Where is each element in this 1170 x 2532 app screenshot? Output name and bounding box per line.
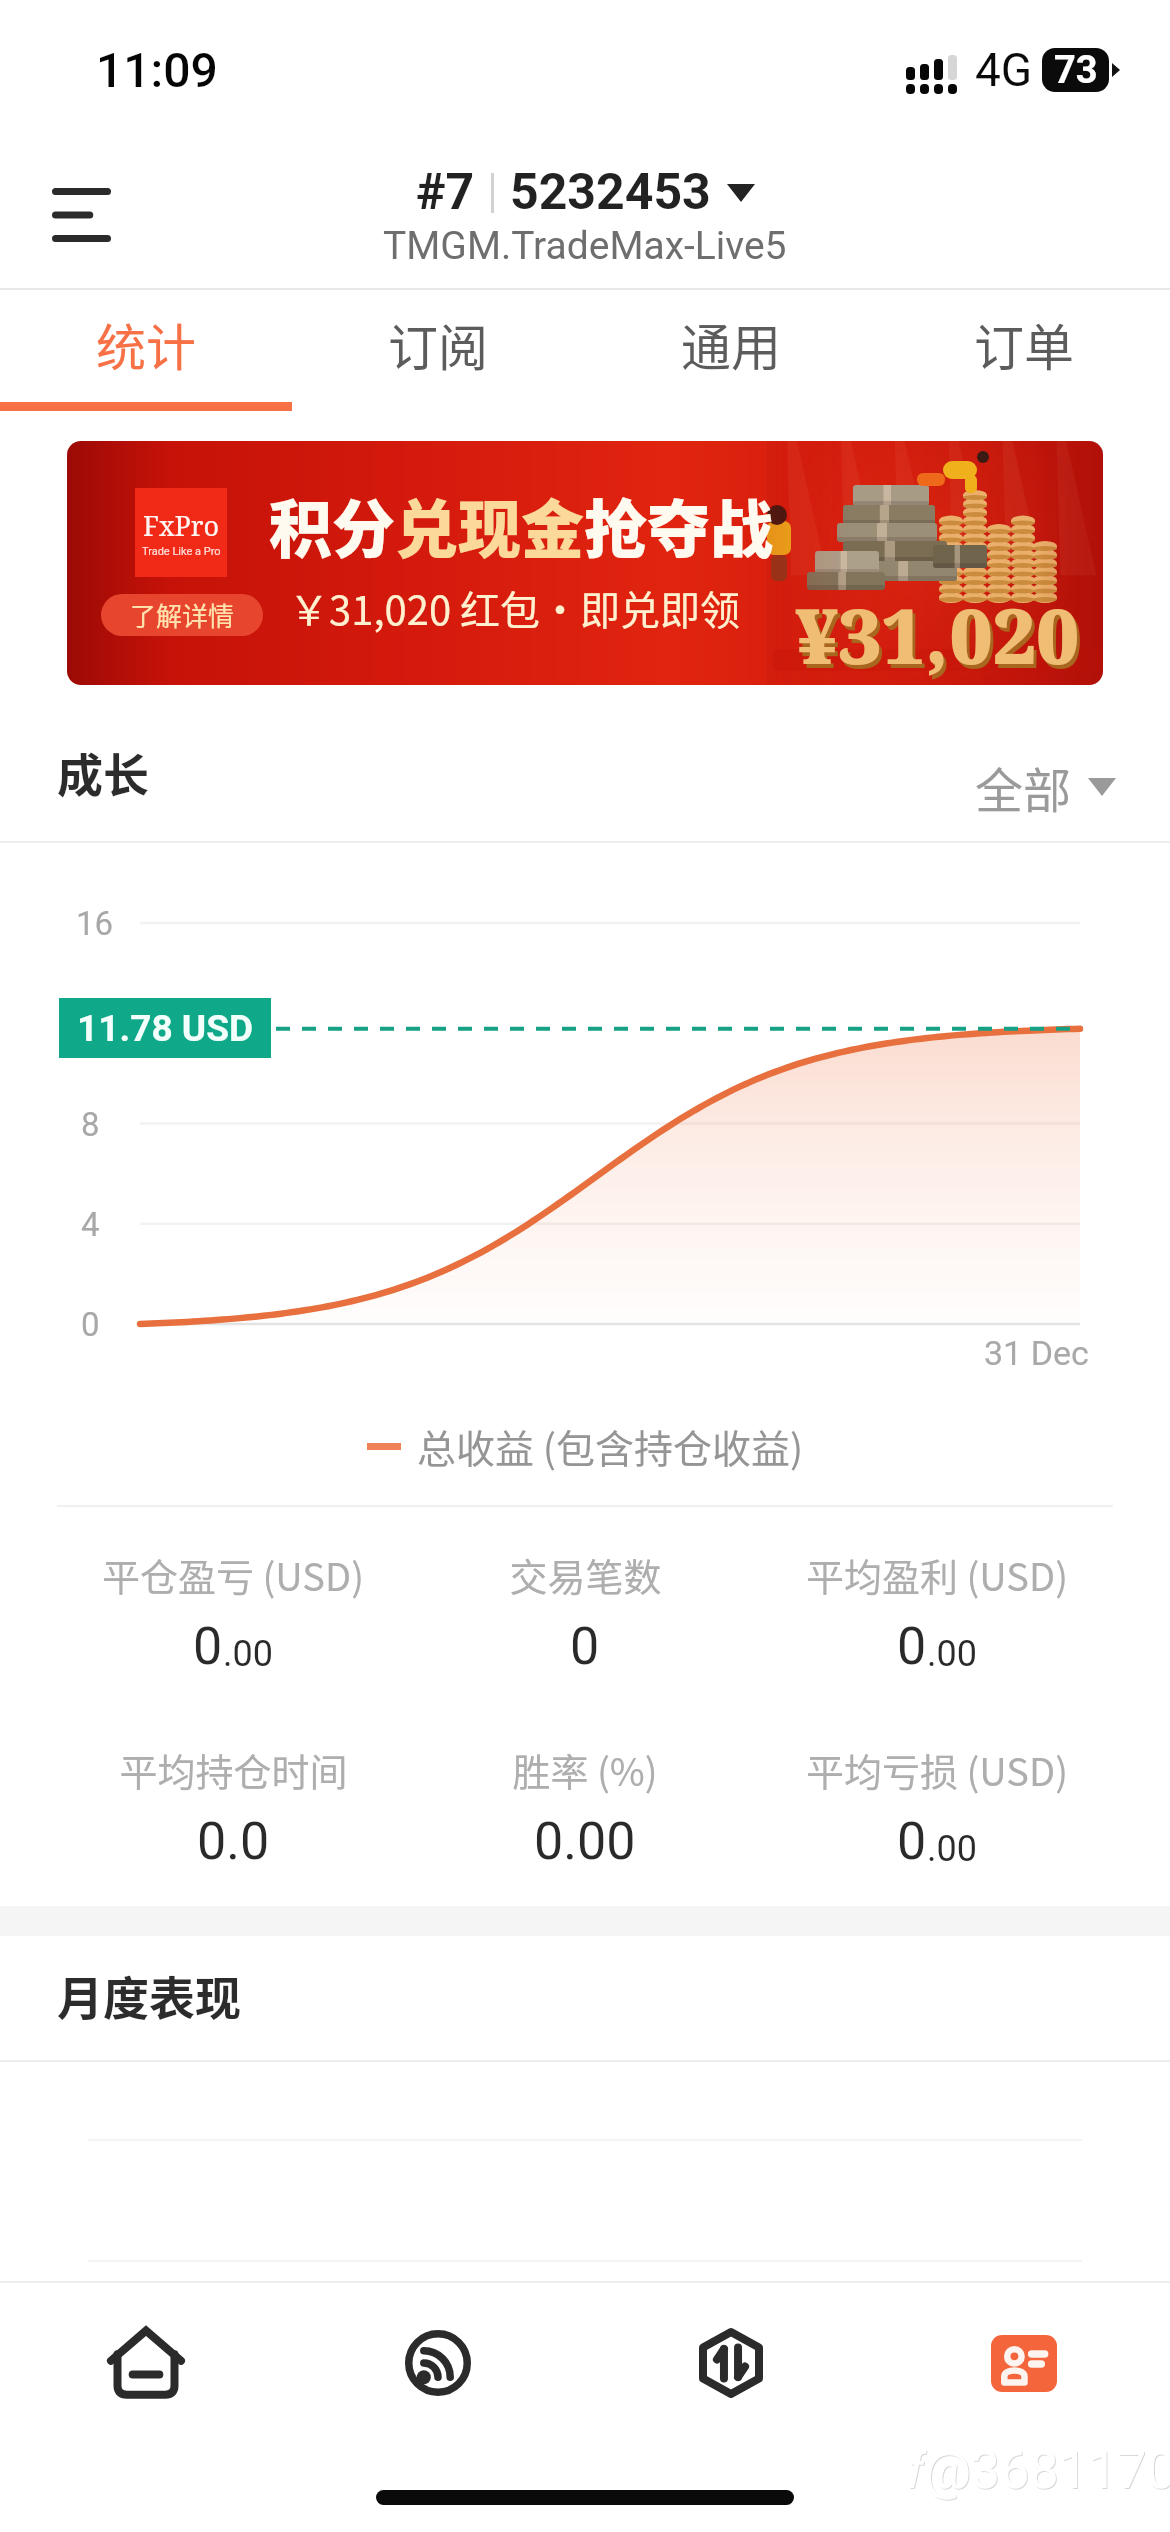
staticText: 平均亏损 (USD)	[806, 1742, 1068, 1797]
button[interactable]: Home	[0, 2283, 292, 2443]
staticText: 4	[81, 1205, 100, 1244]
staticText: 积分	[269, 479, 395, 570]
button[interactable]: 订阅	[292, 290, 584, 412]
staticText: 𝑓@3681170	[908, 2440, 1170, 2501]
staticText: 兑现金	[395, 479, 584, 570]
staticText: 平均盈利 (USD)	[806, 1547, 1068, 1602]
staticText: 8	[81, 1105, 100, 1144]
staticText: 总收益 (包含持仓收益)	[417, 1418, 804, 1474]
staticText: .00	[927, 1633, 977, 1675]
staticText: FxPro	[143, 507, 220, 544]
staticText: 5232453	[510, 163, 711, 222]
staticText: 0	[897, 1616, 927, 1677]
button[interactable]: Profile	[877, 2283, 1170, 2443]
staticText: 11:09	[96, 42, 218, 98]
staticText: 月度表现	[57, 1962, 241, 2029]
staticText: 抢夺战	[584, 479, 773, 570]
button[interactable]: 平均亏损 (USD)	[761, 1742, 1113, 1872]
button[interactable]: 通用	[584, 290, 877, 412]
button[interactable]: 了解详情	[101, 594, 263, 636]
staticText: 0	[570, 1616, 600, 1677]
staticText: 𝑓@3681170	[909, 2441, 1170, 2502]
staticText: 0.00	[534, 1811, 636, 1872]
button[interactable]: 平仓盈亏 (USD)	[57, 1547, 409, 1677]
staticText: .00	[223, 1633, 273, 1675]
button[interactable]: 平均盈利 (USD)	[761, 1547, 1113, 1677]
button[interactable]: #7	[383, 163, 787, 269]
staticText: TMGM.TradeMax-Live5	[383, 223, 787, 269]
button[interactable]: ¥31,020	[67, 441, 1103, 685]
button[interactable]: Menu	[21, 160, 141, 270]
staticText: 0	[81, 1305, 100, 1344]
staticText: 31 Dec	[984, 1333, 1089, 1373]
staticText: 订单	[974, 308, 1074, 380]
staticText: 平仓盈亏 (USD)	[102, 1547, 364, 1602]
button[interactable]: 交易笔数	[409, 1547, 761, 1677]
staticText: #7	[416, 163, 475, 222]
staticText: 交易笔数	[509, 1547, 662, 1602]
staticText: Trade Like a Pro	[142, 545, 221, 558]
staticText: 成长	[57, 739, 149, 806]
staticText: .00	[927, 1828, 977, 1870]
button[interactable]: 统计	[0, 290, 292, 412]
button[interactable]: 订单	[877, 290, 1170, 412]
staticText: ¥31,020	[798, 587, 1083, 685]
staticText: 16	[76, 904, 114, 943]
button[interactable]: 平均持仓时间	[57, 1742, 409, 1872]
staticText: 通用	[681, 308, 781, 380]
button[interactable]: Signals	[292, 2283, 584, 2443]
button[interactable]: 胜率 (%)	[409, 1742, 761, 1872]
staticText: 平均持仓时间	[119, 1742, 348, 1797]
staticText: 0.0	[197, 1811, 270, 1872]
staticText: ￥31,020 红包·即兑即领	[289, 579, 741, 637]
staticText: 了解详情	[130, 596, 235, 634]
staticText: 0	[897, 1811, 927, 1872]
staticText: 4G	[975, 43, 1033, 97]
staticText: 统计	[96, 308, 196, 380]
staticText: 0	[193, 1616, 223, 1677]
staticText: 胜率 (%)	[512, 1742, 658, 1797]
staticText: 订阅	[388, 308, 488, 380]
staticText: ¥31,020	[795, 583, 1080, 685]
staticText: 11.78 USD	[77, 1007, 254, 1050]
staticText: 全部	[975, 752, 1072, 822]
button[interactable]: 全部	[975, 752, 1116, 822]
staticText: 73	[1054, 48, 1098, 92]
button[interactable]: Trade	[584, 2283, 877, 2443]
